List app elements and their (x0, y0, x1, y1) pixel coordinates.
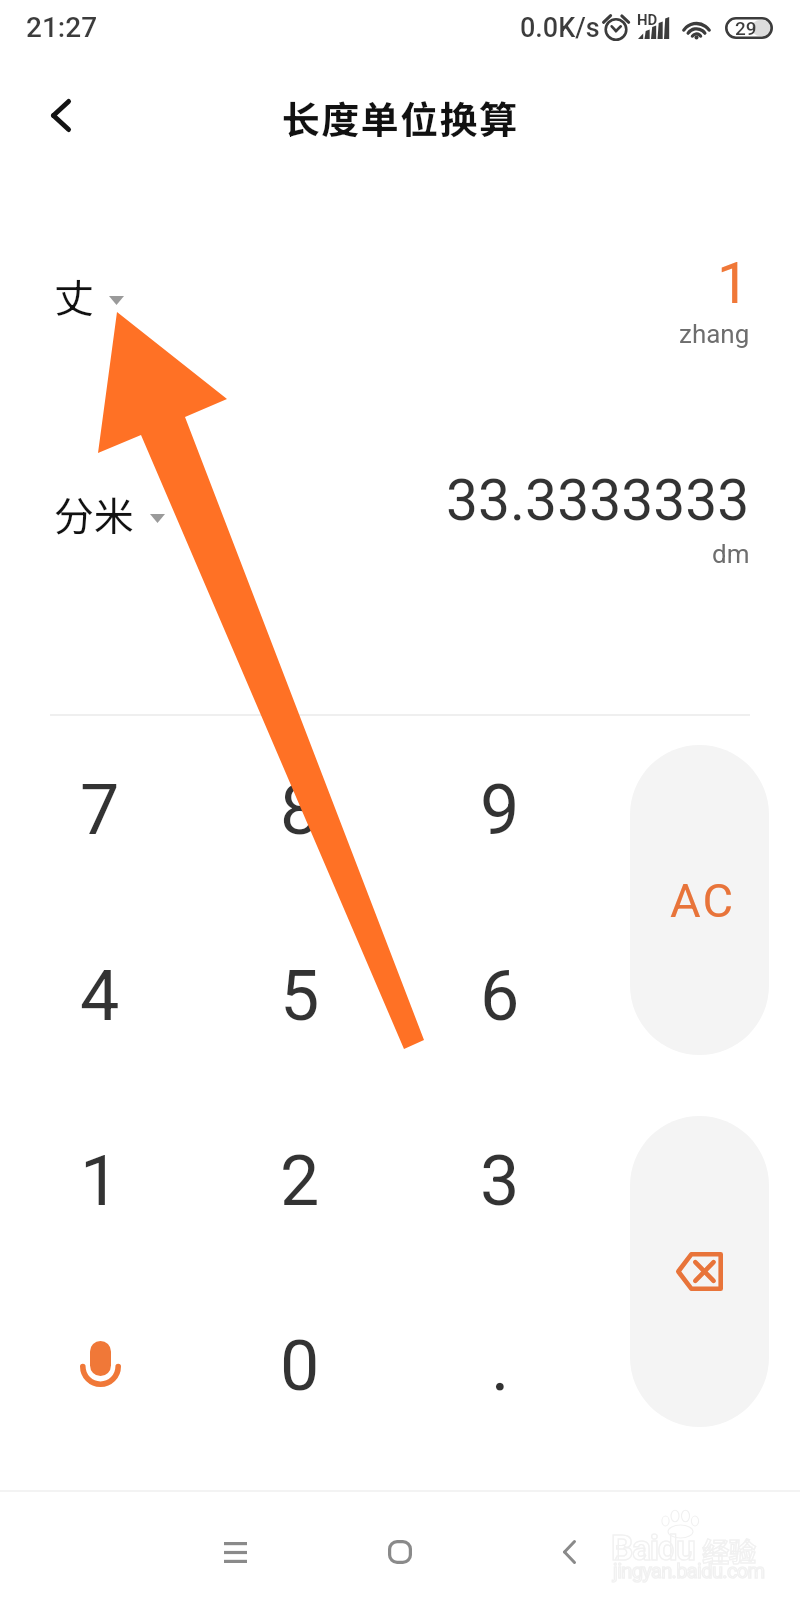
button[interactable]: 4 (0, 903, 200, 1088)
staticText: zhang (679, 319, 750, 349)
staticText: 21:27 (26, 11, 98, 44)
button[interactable] (0, 426, 800, 606)
button[interactable]: AC (630, 745, 769, 1055)
staticText: . (491, 1325, 510, 1407)
button[interactable]: Backspace (630, 1116, 769, 1427)
staticText: jingyan.baidu.com (613, 1559, 765, 1582)
staticText: 6 (480, 955, 520, 1037)
staticText: 29 (735, 17, 757, 39)
button[interactable]: 9 (400, 717, 600, 902)
button[interactable]: 1 (0, 1088, 200, 1273)
staticText: 分米 (54, 485, 134, 543)
button[interactable] (0, 208, 800, 388)
button[interactable]: 6 (400, 903, 600, 1088)
button[interactable]: Back (24, 84, 98, 146)
button[interactable]: 7 (0, 717, 200, 902)
staticText: 经验 (702, 1531, 756, 1570)
staticText: 4 (80, 955, 120, 1037)
staticText: dm (712, 539, 750, 569)
staticText: Baidu (611, 1528, 695, 1569)
staticText: 5 (280, 955, 320, 1037)
staticText: 丈 (54, 267, 94, 325)
button[interactable]: 0 (200, 1273, 400, 1458)
staticText: AC (670, 873, 735, 928)
staticText: 2 (280, 1140, 320, 1222)
button[interactable]: Back (519, 1502, 619, 1600)
staticText: 长度单位换算 (282, 90, 519, 145)
button[interactable]: Menu (185, 1502, 285, 1600)
staticText: 0.0K/s (520, 12, 600, 44)
staticText: HD (637, 11, 658, 29)
staticText: 3 (480, 1140, 520, 1222)
button[interactable]: 3 (400, 1088, 600, 1273)
staticText: 1 (717, 250, 750, 317)
staticText: 1 (80, 1140, 120, 1222)
button[interactable]: Home (350, 1502, 450, 1600)
button[interactable]: 2 (200, 1088, 400, 1273)
button[interactable]: 5 (200, 903, 400, 1088)
staticText: 7 (80, 769, 120, 851)
button[interactable]: . (400, 1273, 600, 1458)
button[interactable]: Voice input (0, 1273, 200, 1458)
button[interactable]: 8 (200, 717, 400, 902)
staticText: 33.3333333 (446, 467, 750, 534)
staticText: 0 (280, 1325, 320, 1407)
staticText: 9 (480, 769, 520, 851)
staticText: 8 (280, 769, 320, 851)
